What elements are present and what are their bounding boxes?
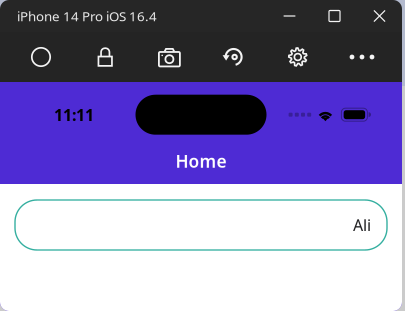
- button[interactable]: Close: [357, 0, 402, 32]
- button[interactable]: Maximize: [312, 0, 357, 32]
- staticText: Home: [175, 149, 226, 172]
- button[interactable]: More: [339, 40, 385, 74]
- button[interactable]: Home: [18, 40, 64, 74]
- button[interactable]: Minimize: [267, 0, 312, 32]
- staticText: Ali: [353, 214, 371, 236]
- button[interactable]: Settings: [275, 40, 321, 74]
- button[interactable]: Rotate: [211, 40, 257, 74]
- staticText: iPhone 14 Pro iOS 16.4: [17, 7, 157, 25]
- button[interactable]: Screenshot: [146, 40, 192, 74]
- staticText: 11:11: [54, 104, 94, 125]
- button[interactable]: Lock: [82, 40, 128, 74]
